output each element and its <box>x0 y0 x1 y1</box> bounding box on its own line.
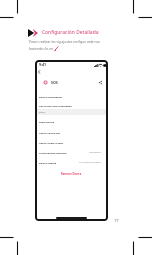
staticText: Add to Home Screen <box>39 141 64 144</box>
staticText: 17 <box>114 218 119 223</box>
staticText: Share Device <box>39 120 55 123</box>
button[interactable]: Device Update <box>35 157 108 167</box>
staticText: Remove Device <box>61 172 82 176</box>
staticText: Device Update <box>39 161 57 164</box>
button[interactable]: Share Device <box>35 115 108 127</box>
staticText: Create Device Network <box>39 151 67 154</box>
button[interactable]: Create Device Network <box>35 147 108 157</box>
button[interactable]: Share <box>97 79 104 86</box>
staticText: No update available <box>79 161 101 164</box>
staticText: SOS <box>51 80 58 85</box>
staticText: Configuración Detallada <box>42 29 99 36</box>
button[interactable]: Back <box>35 68 43 76</box>
staticText: Para ir realizar las sig ajustes configu… <box>29 40 100 51</box>
staticText: Tap-to-Run and Automation <box>39 104 72 107</box>
staticText: Connected <box>89 151 101 154</box>
staticText: Add to Favourites <box>39 131 61 134</box>
button[interactable]: Tap-to-Run and Automation <box>35 101 108 109</box>
button[interactable]: Remove Device <box>35 167 108 181</box>
button[interactable]: Add to Home Screen <box>35 137 108 147</box>
staticText: 9:41 <box>39 62 47 67</box>
staticText: Device Information <box>39 95 63 98</box>
button[interactable]: Add to Favourites <box>35 127 108 137</box>
staticText: Share <box>39 111 45 114</box>
button[interactable]: Device Information <box>35 92 108 101</box>
